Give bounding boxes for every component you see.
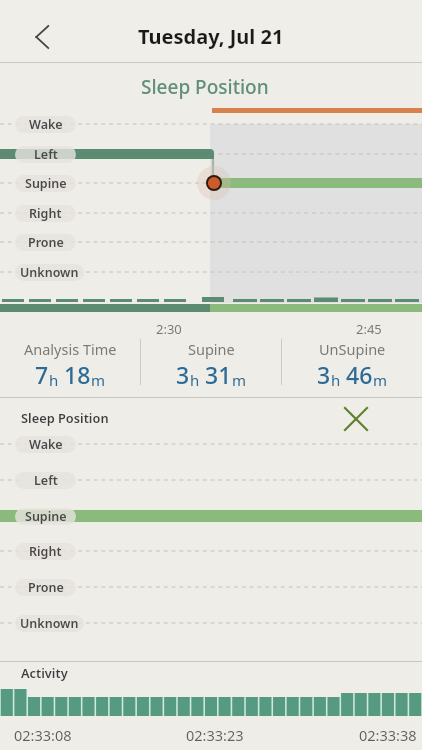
staticText: Prone — [28, 579, 64, 596]
staticText: Unknown — [20, 615, 79, 632]
staticText: h — [331, 370, 341, 390]
staticText: Right — [29, 543, 62, 560]
staticText: 18 — [64, 359, 91, 390]
staticText: Left — [34, 472, 58, 489]
staticText: UnSupine — [319, 339, 386, 359]
staticText: Left — [34, 146, 58, 163]
staticText: h — [190, 370, 200, 390]
staticText: Wake — [29, 436, 63, 453]
staticText: 3 — [317, 359, 331, 390]
staticText: 46 — [346, 359, 373, 390]
staticText: Analysis Time — [24, 339, 117, 359]
staticText: Supine — [188, 339, 235, 359]
staticText: 2:45 — [356, 320, 382, 338]
staticText: 02:33:23 — [186, 725, 244, 745]
staticText: Supine — [25, 508, 67, 525]
staticText: 7 — [35, 359, 49, 390]
staticText: Sleep Position — [21, 409, 109, 426]
staticText: Supine — [25, 175, 67, 192]
staticText: Activity — [21, 664, 68, 681]
staticText: m — [91, 370, 106, 390]
button[interactable]: Back — [19, 14, 65, 60]
staticText: Unknown — [20, 264, 79, 281]
staticText: m — [232, 370, 247, 390]
staticText: 2:30 — [156, 320, 182, 338]
staticText: Right — [29, 205, 62, 222]
staticText: Wake — [29, 116, 63, 133]
staticText: 3 — [176, 359, 190, 390]
staticText: h — [49, 370, 59, 390]
staticText: Tuesday, Jul 21 — [138, 23, 284, 50]
staticText: Sleep Position — [141, 74, 269, 100]
staticText: m — [373, 370, 388, 390]
staticText: 02:33:08 — [14, 725, 72, 745]
staticText: 02:33:38 — [359, 725, 417, 745]
staticText: 31 — [205, 359, 232, 390]
staticText: Prone — [28, 234, 64, 251]
button[interactable]: Close — [338, 401, 374, 437]
